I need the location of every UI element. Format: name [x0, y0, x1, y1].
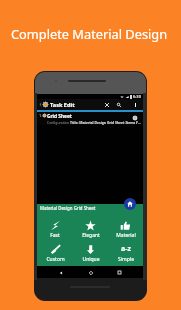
button[interactable]: Home [124, 198, 136, 210]
button[interactable]: Back [38, 99, 43, 110]
staticText: Elegant [82, 232, 100, 239]
staticText: Material Design Grid Sheet [40, 205, 96, 211]
button[interactable]: Recents [114, 267, 125, 278]
button[interactable]: Elegant [73, 219, 108, 240]
staticText: a-z [121, 244, 131, 254]
staticText: 1. [39, 113, 43, 119]
staticText: Custom [46, 256, 65, 263]
staticText: Grid Sheet [47, 113, 72, 120]
button[interactable]: Home [85, 267, 96, 278]
button[interactable]: Fast [37, 219, 73, 240]
staticText: App [50, 109, 57, 112]
button[interactable]: Item settings [130, 113, 139, 122]
button[interactable]: Unique [73, 243, 108, 264]
button[interactable]: Close [102, 99, 112, 110]
button[interactable]: Material [108, 219, 143, 240]
button[interactable]: a-z [108, 243, 143, 264]
staticText: Fast [50, 232, 60, 239]
button[interactable]: Search [114, 99, 124, 110]
staticText: Simple [118, 256, 134, 263]
staticText: Title: Material Design Grid Sheet Items … [70, 120, 141, 125]
button[interactable]: 1. [37, 112, 143, 125]
staticText: Configuration [47, 120, 70, 125]
button[interactable]: Custom [37, 243, 73, 264]
button[interactable]: Back [55, 267, 66, 278]
staticText: Unique [82, 256, 100, 263]
staticText: Material [116, 232, 136, 239]
staticText: Task Edit [50, 101, 75, 109]
button[interactable]: More options [130, 99, 140, 110]
staticText: 6:30 [133, 94, 141, 99]
staticText: Complete Material Design [11, 25, 168, 42]
